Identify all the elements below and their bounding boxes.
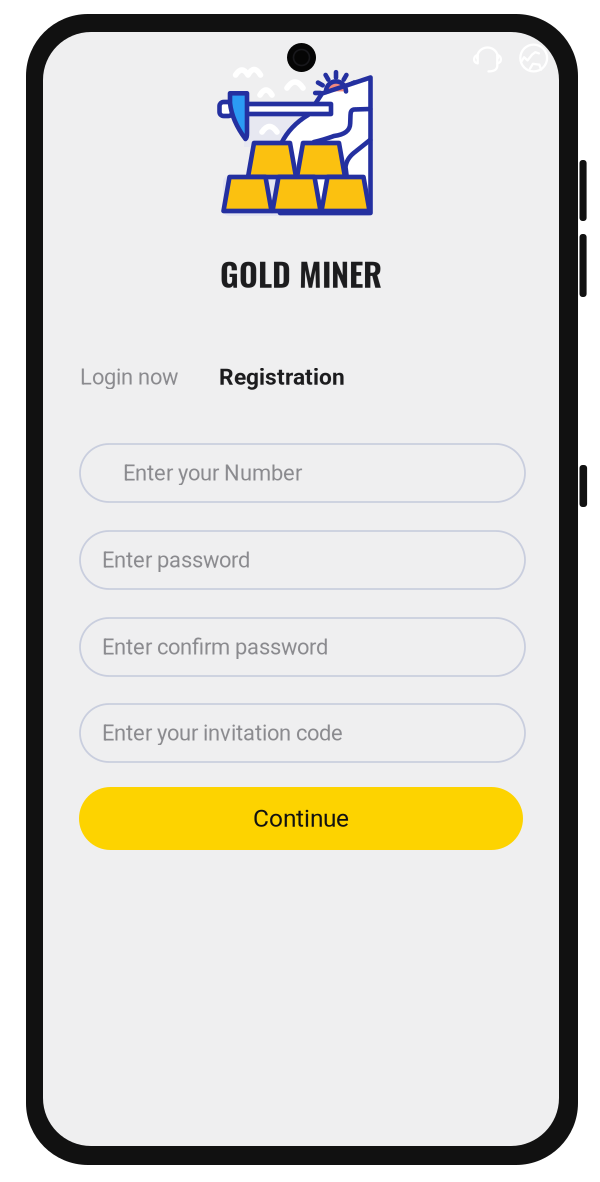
button[interactable]: Continue [79,787,523,850]
staticText: Enter password [102,547,250,573]
button[interactable]: Login now [80,359,190,395]
staticText: Enter your invitation code [102,720,343,746]
staticText: Enter your Number [123,460,302,486]
staticText: Registration [219,364,345,390]
button[interactable]: Registration [219,359,349,395]
button[interactable]: Customer service [472,43,502,73]
staticText: GOLD MINER [220,249,382,297]
staticText: Enter confirm password [102,634,328,660]
button[interactable]: Language [519,43,549,73]
staticText: Login now [80,364,178,390]
staticText: Continue [253,804,349,833]
